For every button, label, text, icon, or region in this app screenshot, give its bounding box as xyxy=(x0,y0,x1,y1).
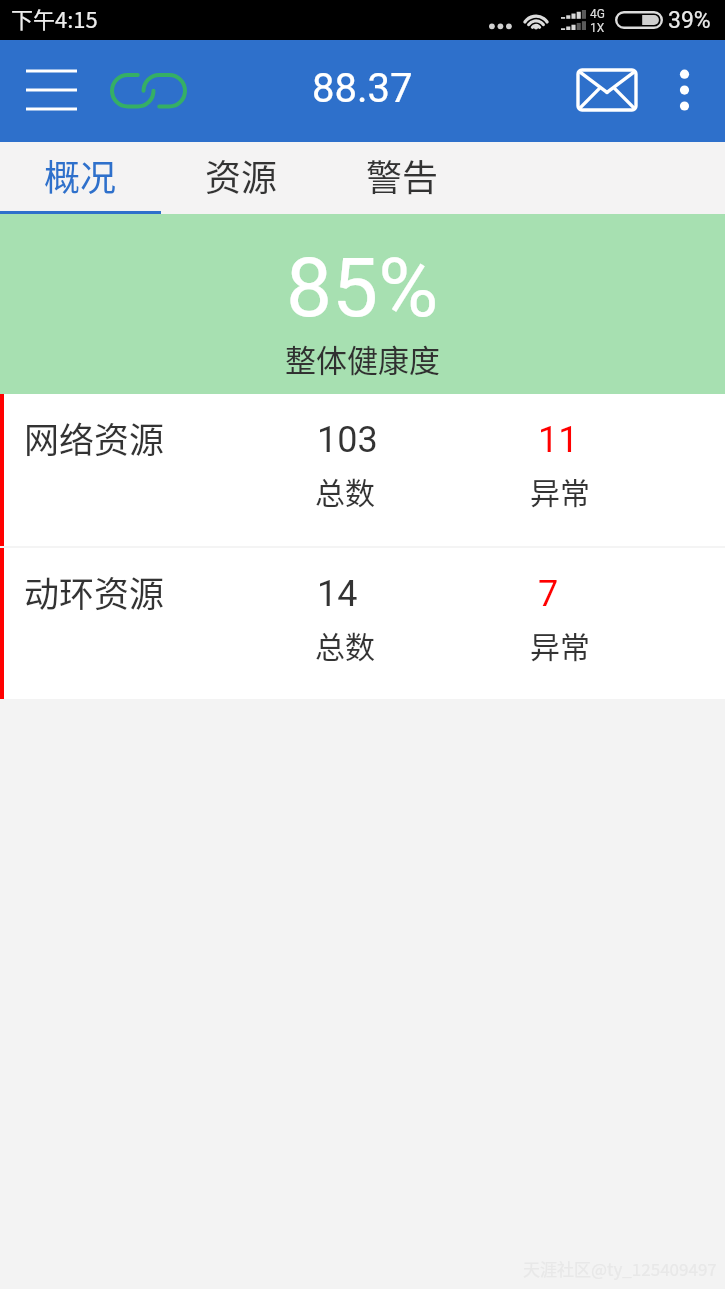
staticText: 14 xyxy=(317,573,358,615)
button[interactable]: 网络资源 xyxy=(0,394,725,546)
staticText: 天涯社区@ty_125409497 xyxy=(523,1256,717,1281)
staticText: 异常 xyxy=(530,469,590,512)
staticText: 11 xyxy=(538,419,579,461)
button[interactable]: 资源 xyxy=(161,142,322,214)
staticText: 网络资源 xyxy=(24,412,165,463)
staticText: 103 xyxy=(317,419,378,461)
button[interactable]: More options xyxy=(661,60,709,120)
button[interactable]: 动环资源 xyxy=(0,548,725,699)
staticText: 概况 xyxy=(44,149,117,201)
staticText: 动环资源 xyxy=(24,566,165,617)
staticText: 整体健康度 xyxy=(285,336,440,381)
staticText: 88.37 xyxy=(312,65,413,112)
staticText: 39% xyxy=(668,7,711,34)
button[interactable]: 概况 xyxy=(0,142,161,214)
button[interactable]: 警告 xyxy=(322,142,483,214)
staticText: 警告 xyxy=(366,149,439,201)
button[interactable]: Messages xyxy=(566,58,648,122)
staticText: 下午4:15 xyxy=(11,2,98,34)
staticText: 总数 xyxy=(315,469,375,512)
staticText: 7 xyxy=(538,573,559,615)
staticText: 4G xyxy=(590,7,605,21)
staticText: 85% xyxy=(286,240,439,336)
staticText: 1X xyxy=(590,21,605,35)
staticText: 总数 xyxy=(315,623,375,666)
button[interactable]: Navigation menu xyxy=(14,59,89,121)
staticText: 异常 xyxy=(530,623,590,666)
staticText: 资源 xyxy=(205,149,278,201)
